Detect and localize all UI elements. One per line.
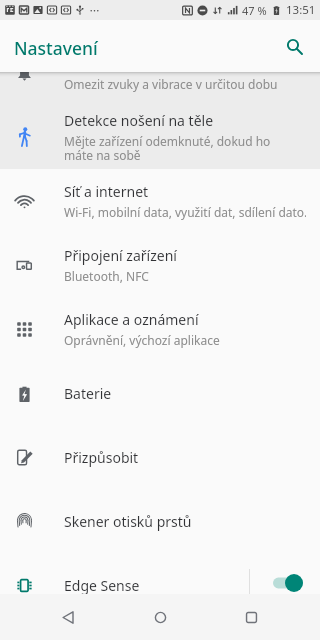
button[interactable]: Edge Sense xyxy=(0,553,320,594)
button[interactable]: Síť a internet xyxy=(0,169,320,233)
staticText: Aplikace a oznámení xyxy=(64,310,199,329)
staticText: Wi-Fi, mobilní data, využití dat, sdílen… xyxy=(64,204,306,220)
staticText: Přizpůsobit xyxy=(64,448,139,467)
button[interactable]: Home xyxy=(140,597,180,637)
staticText: Oprávnění, výchozí aplikace xyxy=(64,332,220,348)
staticText: 13:51 xyxy=(286,2,316,18)
staticText: Detekce nošení na těle xyxy=(64,111,214,130)
staticText: Připojení zařízení xyxy=(64,246,177,265)
staticText: Mějte zařízení odemknuté, dokud ho máte … xyxy=(64,133,271,163)
button[interactable]: Skener otisků prstů xyxy=(0,489,320,553)
staticText: 47 % xyxy=(242,3,267,18)
staticText: Edge Sense xyxy=(64,576,140,594)
button[interactable]: Připojení zařízení xyxy=(0,233,320,297)
button[interactable]: Back xyxy=(48,597,88,637)
button[interactable]: Search xyxy=(276,28,312,64)
button[interactable]: Recents xyxy=(231,597,271,637)
staticText: Nastavení xyxy=(14,36,98,60)
staticText: Omezit zvuky a vibrace v určitou dobu xyxy=(64,76,278,92)
staticText: Skener otisků prstů xyxy=(64,512,192,531)
staticText: Síť a internet xyxy=(64,182,149,201)
button[interactable]: Detekce nošení na těle xyxy=(0,105,320,169)
staticText: Baterie xyxy=(64,384,112,403)
button[interactable]: Nerušit xyxy=(0,72,320,105)
button[interactable]: Edge Sense toggle xyxy=(250,553,320,594)
staticText: Bluetooth, NFC xyxy=(64,268,149,284)
button[interactable]: Přizpůsobit xyxy=(0,425,320,489)
button[interactable]: Aplikace a oznámení xyxy=(0,297,320,361)
button[interactable]: Baterie xyxy=(0,361,320,425)
